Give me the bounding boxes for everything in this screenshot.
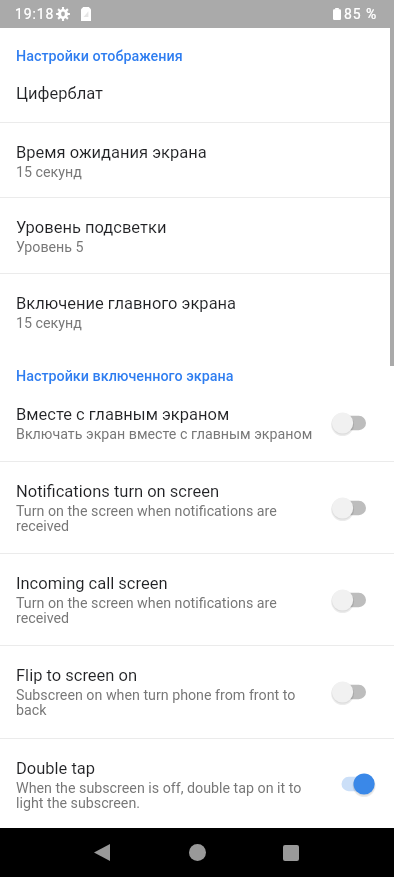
staticText: 85 % bbox=[344, 6, 378, 22]
staticText: 19:18 bbox=[15, 6, 55, 22]
staticText: Turn on the screen when notifications ar… bbox=[16, 503, 324, 535]
staticText: Subscreen on when turn phone from front … bbox=[16, 687, 324, 719]
button[interactable]: Back bbox=[78, 828, 126, 877]
button[interactable]: Incoming call screen bbox=[0, 554, 394, 645]
button[interactable]: Toggle off bbox=[332, 589, 375, 611]
button[interactable]: Recents bbox=[267, 828, 315, 877]
staticText: Включение главного экрана bbox=[16, 294, 237, 313]
staticText: Turn on the screen when notifications ar… bbox=[16, 595, 324, 627]
staticText: Flip to screen on bbox=[16, 666, 138, 685]
staticText: Время ожидания экрана bbox=[16, 143, 207, 162]
staticText: Incoming call screen bbox=[16, 574, 168, 593]
staticText: Циферблат bbox=[16, 84, 104, 103]
button[interactable]: Уровень подсветки bbox=[0, 198, 394, 273]
staticText: Уровень 5 bbox=[16, 239, 84, 256]
staticText: Notifications turn on screen bbox=[16, 482, 219, 501]
button[interactable]: Циферблат bbox=[0, 65, 394, 122]
button[interactable]: Flip to screen on bbox=[0, 646, 394, 738]
button[interactable]: Toggle off bbox=[332, 497, 375, 519]
button[interactable]: Double tap bbox=[0, 739, 394, 828]
button[interactable]: Время ожидания экрана bbox=[0, 123, 394, 197]
staticText: Настройки включенного экрана bbox=[16, 368, 234, 385]
button[interactable]: Toggle off bbox=[332, 681, 375, 703]
button[interactable]: Включение главного экрана bbox=[0, 274, 394, 348]
staticText: 15 секунд bbox=[16, 315, 82, 332]
staticText: Уровень подсветки bbox=[16, 218, 167, 237]
staticText: Настройки отображения bbox=[16, 48, 183, 65]
button[interactable]: Toggle on bbox=[332, 773, 375, 795]
button[interactable]: Home bbox=[173, 828, 221, 877]
staticText: Вместе с главным экраном bbox=[16, 405, 230, 424]
staticText: 15 секунд bbox=[16, 164, 82, 181]
button[interactable]: Вместе с главным экраном bbox=[0, 385, 394, 461]
staticText: Включать экран вместе с главным экраном bbox=[16, 426, 313, 443]
staticText: When the subscreen is off, double tap on… bbox=[16, 780, 324, 812]
staticText: Double tap bbox=[16, 759, 96, 778]
button[interactable]: Notifications turn on screen bbox=[0, 462, 394, 553]
button[interactable]: Toggle off bbox=[332, 412, 375, 434]
